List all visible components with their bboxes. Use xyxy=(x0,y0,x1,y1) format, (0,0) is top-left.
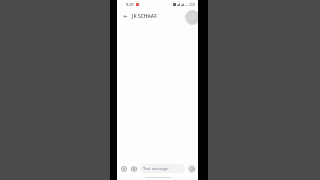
staticText: Text message xyxy=(143,166,169,171)
staticText: 9:41 xyxy=(126,2,134,7)
button[interactable]: Text message xyxy=(140,164,185,173)
button[interactable]: Add attachment xyxy=(119,164,128,173)
button[interactable]: Take photo xyxy=(129,164,138,173)
button[interactable]: Contact photo xyxy=(185,10,200,25)
button[interactable]: JK SCHAAF xyxy=(132,13,157,20)
button[interactable]: Back xyxy=(120,11,130,21)
staticText: — xyxy=(185,2,189,7)
button[interactable]: Send xyxy=(187,164,196,173)
